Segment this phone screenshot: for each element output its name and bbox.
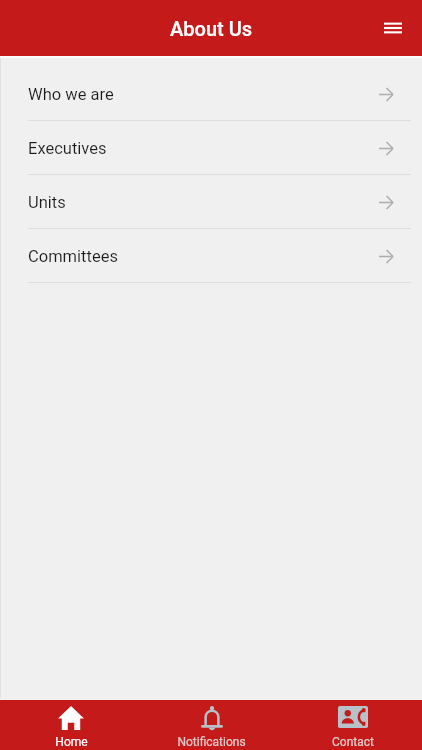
staticText: Executives	[28, 139, 107, 158]
button[interactable]: Units	[0, 175, 422, 229]
staticText: About Us	[170, 17, 253, 40]
staticText: Who we are	[28, 85, 114, 104]
staticText: Committees	[28, 247, 118, 266]
button[interactable]: Committees	[0, 229, 422, 283]
staticText: Contact	[332, 735, 374, 749]
button[interactable]: Home	[0, 700, 140, 750]
staticText: Units	[28, 193, 66, 212]
button[interactable]: Menu	[371, 6, 415, 50]
button[interactable]: Who we are	[0, 67, 422, 121]
button[interactable]: Notifications	[140, 700, 281, 750]
button[interactable]: Executives	[0, 121, 422, 175]
staticText: Notifications	[177, 735, 246, 749]
button[interactable]: Contact	[281, 700, 422, 750]
staticText: Home	[55, 735, 88, 749]
